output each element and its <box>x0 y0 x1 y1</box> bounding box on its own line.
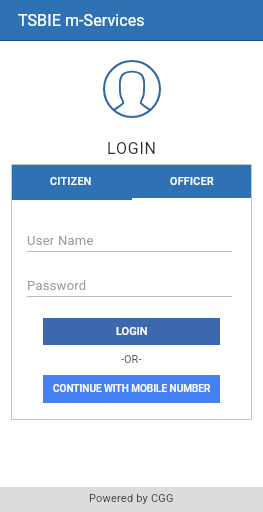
staticText: CITIZEN <box>50 175 92 187</box>
staticText: CONTINUE WITH MOBILE NUMBER <box>53 383 211 395</box>
staticText: Powered by CGG <box>89 492 174 505</box>
staticText: -OR- <box>121 353 142 366</box>
button[interactable]: LOGIN <box>43 318 220 345</box>
button[interactable]: OFFICER <box>131 164 252 198</box>
staticText: TSBIE m-Services <box>18 11 145 30</box>
staticText: LOGIN <box>107 139 157 158</box>
button[interactable]: CITIZEN <box>11 164 131 198</box>
staticText: OFFICER <box>170 175 214 187</box>
staticText: Password <box>27 278 87 293</box>
staticText: User Name <box>27 233 94 248</box>
button[interactable]: CONTINUE WITH MOBILE NUMBER <box>43 375 220 403</box>
staticText: LOGIN <box>116 325 148 338</box>
